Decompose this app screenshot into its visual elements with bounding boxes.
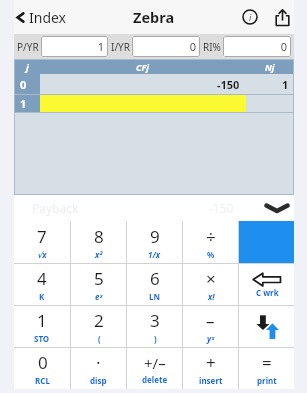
button[interactable]: 6 bbox=[127, 264, 182, 305]
button[interactable]: = bbox=[239, 348, 294, 389]
staticText: x² bbox=[95, 249, 103, 260]
button[interactable]: 0 bbox=[14, 348, 70, 389]
button[interactable]: 8 bbox=[71, 221, 126, 263]
staticText: -150 bbox=[209, 200, 234, 216]
button[interactable]: – bbox=[183, 306, 238, 347]
button[interactable]: 7 bbox=[14, 221, 70, 263]
button[interactable]: Share bbox=[270, 5, 294, 29]
button[interactable]: ÷ bbox=[183, 221, 238, 263]
staticText: – bbox=[206, 309, 215, 332]
staticText: ÷ bbox=[206, 225, 216, 248]
staticText: 0 bbox=[20, 77, 27, 92]
staticText: x! bbox=[208, 291, 215, 302]
staticText: print bbox=[257, 375, 277, 386]
staticText: 0 bbox=[280, 39, 287, 54]
staticText: 1 bbox=[20, 96, 27, 111]
button[interactable]: 9 bbox=[127, 221, 182, 263]
staticText: 6 bbox=[150, 267, 160, 290]
staticText: + bbox=[206, 351, 216, 374]
staticText: +/– bbox=[144, 353, 166, 373]
staticText: 9 bbox=[150, 225, 160, 248]
staticText: 4 bbox=[37, 267, 47, 290]
staticText: delete bbox=[142, 374, 168, 385]
staticText: ) bbox=[154, 333, 157, 344]
staticText: yˣ bbox=[207, 333, 214, 344]
staticText: -150 bbox=[217, 77, 240, 92]
button[interactable]: 0 bbox=[132, 36, 200, 57]
staticText: 1 bbox=[97, 39, 104, 54]
staticText: K bbox=[39, 291, 45, 302]
staticText: × bbox=[206, 267, 216, 290]
button[interactable]: 5 bbox=[71, 264, 126, 305]
staticText: LN bbox=[149, 291, 160, 302]
staticText: 5 bbox=[94, 267, 104, 290]
button[interactable]: + bbox=[183, 348, 238, 389]
staticText: i bbox=[249, 11, 252, 23]
staticText: 7 bbox=[37, 225, 47, 248]
staticText: √x bbox=[37, 249, 47, 260]
button[interactable]: 1 bbox=[14, 306, 70, 347]
button[interactable]: C wrk bbox=[239, 264, 294, 305]
staticText: = bbox=[262, 351, 272, 374]
staticText: 2 bbox=[94, 309, 104, 332]
staticText: 3 bbox=[150, 309, 160, 332]
button[interactable]: Index bbox=[14, 0, 73, 34]
button[interactable]: × bbox=[183, 264, 238, 305]
staticText: 8 bbox=[94, 225, 104, 248]
staticText: Payback bbox=[32, 200, 79, 216]
staticText: · bbox=[96, 351, 101, 374]
staticText: C wrk bbox=[256, 287, 279, 298]
staticText: ( bbox=[98, 333, 101, 344]
staticText: insert bbox=[199, 375, 223, 386]
button[interactable]: 1 bbox=[41, 36, 108, 57]
staticText: RI% bbox=[203, 40, 221, 54]
staticText: % bbox=[207, 249, 215, 260]
staticText: P/YR bbox=[17, 40, 39, 54]
staticText: eˣ bbox=[95, 291, 103, 302]
staticText: 0 bbox=[189, 39, 196, 54]
button[interactable]: 1 bbox=[14, 95, 294, 112]
button[interactable]: Collapse bbox=[260, 197, 294, 219]
button[interactable]: 0 bbox=[14, 74, 294, 94]
staticText: 1/x bbox=[148, 249, 161, 260]
staticText: Index bbox=[29, 8, 67, 27]
staticText: Nj bbox=[265, 61, 275, 73]
staticText: Zebra bbox=[133, 7, 175, 27]
staticText: CFj bbox=[136, 61, 150, 73]
button[interactable] bbox=[239, 306, 294, 347]
staticText: 1 bbox=[37, 309, 47, 332]
staticText: RCL bbox=[35, 375, 50, 386]
button[interactable]: Info bbox=[238, 5, 262, 29]
staticText: I/YR bbox=[111, 40, 130, 54]
staticText: disp bbox=[90, 375, 107, 386]
staticText: 1 bbox=[282, 77, 289, 92]
button[interactable]: 3 bbox=[127, 306, 182, 347]
button[interactable]: 0 bbox=[223, 36, 291, 57]
button[interactable]: 4 bbox=[14, 264, 70, 305]
staticText: 0 bbox=[38, 351, 48, 374]
button[interactable]: 2 bbox=[71, 306, 126, 347]
staticText: j bbox=[26, 61, 29, 73]
staticText: STO bbox=[34, 333, 50, 344]
button[interactable]: · bbox=[71, 348, 126, 389]
button[interactable]: +/– bbox=[127, 348, 182, 389]
